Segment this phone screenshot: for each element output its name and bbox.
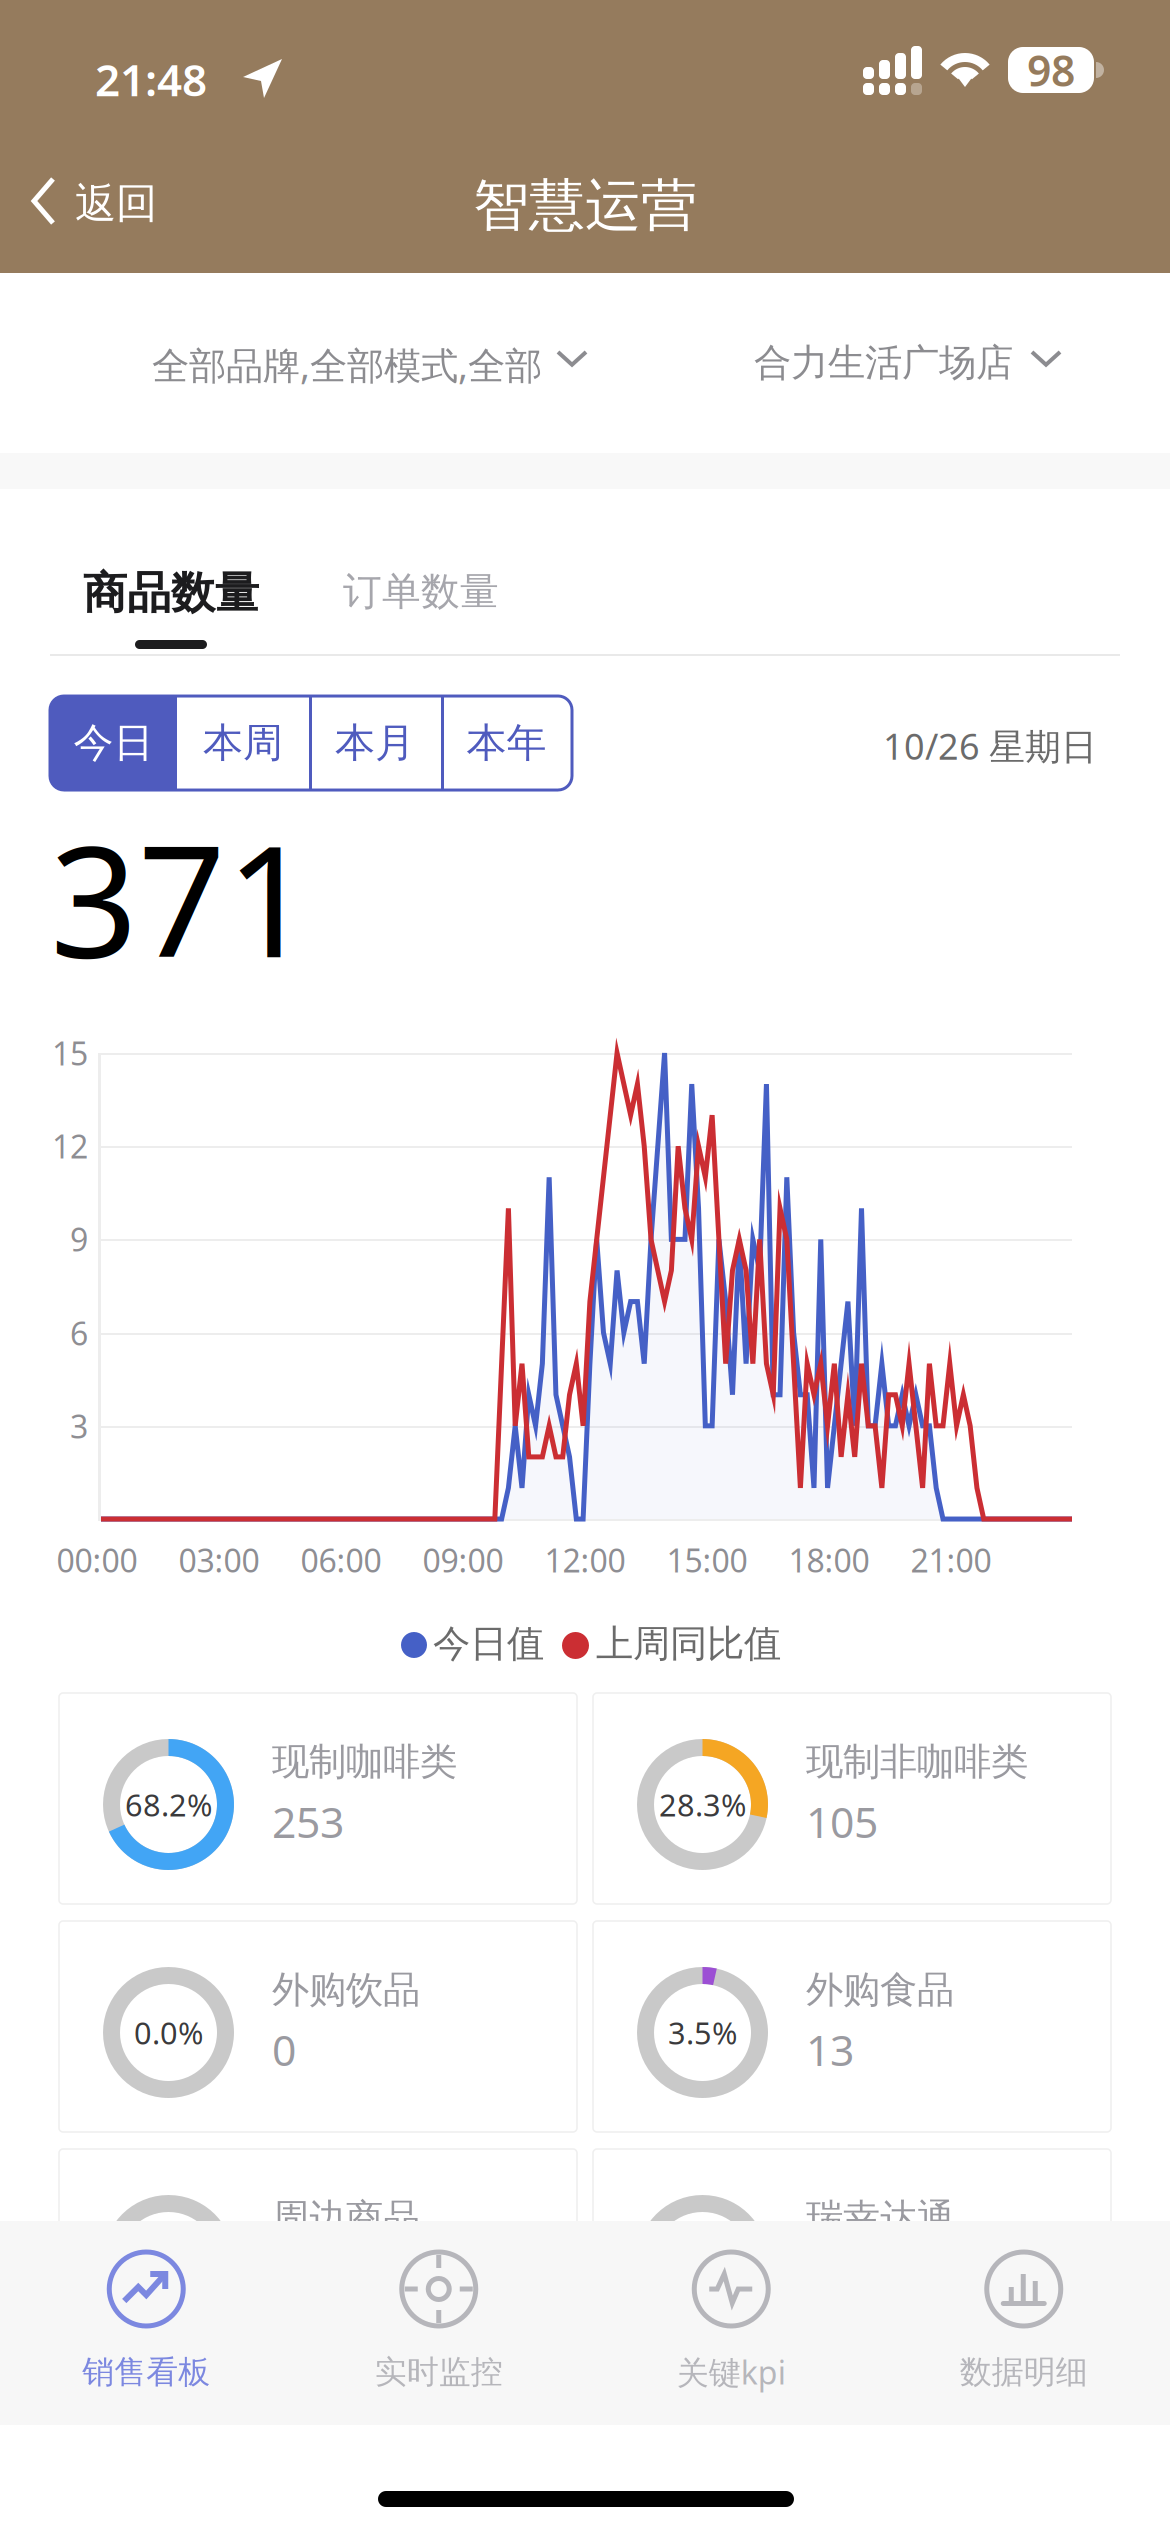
staticText: 周边商品 — [272, 2195, 420, 2241]
staticText: 6 — [70, 1312, 88, 1354]
button[interactable]: 关键kpi — [585, 2221, 877, 2425]
button[interactable]: 合力生活广场店 — [754, 300, 1058, 420]
staticText: 上周同比值 — [596, 1621, 781, 1667]
staticText: 0 — [272, 2021, 296, 2078]
staticText: 00:00 — [56, 1539, 137, 1581]
staticText: 订单数量 — [343, 568, 499, 615]
staticText: 合力生活广场店 — [754, 340, 1013, 386]
button[interactable]: 本月 — [309, 696, 441, 790]
button[interactable]: 0.0% — [59, 2149, 577, 2360]
button[interactable]: 商品数量 — [83, 548, 333, 678]
staticText: 3 — [70, 1405, 88, 1447]
staticText: 12:00 — [544, 1539, 625, 1581]
staticText: 销售看板 — [82, 2352, 210, 2392]
button[interactable]: 本周 — [177, 696, 309, 790]
button[interactable]: 3.5% — [593, 1921, 1111, 2132]
button[interactable]: 数据明细 — [877, 2221, 1170, 2425]
staticText: 今日 — [73, 718, 153, 767]
staticText: 0.0% — [134, 2240, 203, 2281]
staticText: 外购食品 — [806, 1967, 954, 2013]
staticText: 09:00 — [422, 1539, 503, 1581]
button[interactable]: 实时监控 — [292, 2221, 585, 2425]
staticText: 3.5% — [668, 2012, 737, 2053]
staticText: 关键kpi — [677, 2351, 786, 2393]
staticText: 12 — [52, 1125, 88, 1167]
staticText: 本月 — [335, 718, 415, 767]
button[interactable]: 68.2% — [59, 1693, 577, 1904]
staticText: 商品数量 — [83, 566, 259, 620]
button[interactable]: 今日 — [50, 696, 177, 790]
staticText: 10/26 星期日 — [883, 722, 1097, 770]
staticText: 15 — [52, 1032, 88, 1074]
staticText: 253 — [272, 1793, 344, 1850]
staticText: 现制非咖啡类 — [806, 1739, 1028, 1785]
staticText: 06:00 — [300, 1539, 381, 1581]
button[interactable]: 销售看板 — [0, 2221, 292, 2425]
button[interactable]: 全部品牌,全部模式,全部 — [152, 300, 584, 420]
staticText: 本年 — [466, 718, 546, 767]
staticText: 105 — [806, 1793, 878, 1850]
button[interactable]: 0.0% — [593, 2149, 1111, 2360]
staticText: 15:00 — [666, 1539, 747, 1581]
staticText: 瑞幸达通 — [806, 2195, 954, 2241]
staticText: 28.3% — [659, 1784, 746, 1825]
button[interactable]: 28.3% — [593, 1693, 1111, 1904]
staticText: 98 — [1027, 42, 1075, 98]
staticText: 今日值 — [433, 1621, 544, 1667]
staticText: 68.2% — [125, 1784, 212, 1825]
staticText: 数据明细 — [960, 2352, 1088, 2392]
staticText: 9 — [70, 1218, 88, 1260]
button[interactable]: 订单数量 — [343, 548, 543, 678]
button[interactable]: 返回 — [0, 138, 200, 273]
button[interactable]: 0.0% — [59, 1921, 577, 2132]
staticText: 智慧运营 — [473, 171, 697, 240]
staticText: 21:00 — [910, 1539, 991, 1581]
staticText: 实时监控 — [375, 2352, 503, 2392]
staticText: 本周 — [203, 718, 283, 767]
staticText: 0.0% — [668, 2240, 737, 2281]
staticText: 0.0% — [134, 2012, 203, 2053]
staticText: 全部品牌,全部模式,全部 — [152, 340, 542, 390]
staticText: 13 — [806, 2021, 854, 2078]
staticText: 371 — [50, 796, 314, 1000]
staticText: 21:48 — [95, 50, 207, 108]
staticText: 18:00 — [788, 1539, 869, 1581]
staticText: 返回 — [75, 178, 157, 229]
button[interactable]: 本年 — [441, 696, 572, 790]
staticText: 外购饮品 — [272, 1967, 420, 2013]
staticText: 03:00 — [178, 1539, 259, 1581]
staticText: 现制咖啡类 — [272, 1739, 457, 1785]
